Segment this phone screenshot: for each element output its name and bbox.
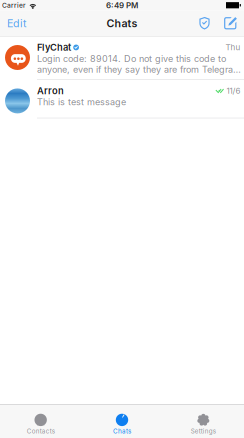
button[interactable]: FlyChat <box>0 36 244 79</box>
staticText: Edit <box>7 17 26 30</box>
staticText: Contacts <box>27 427 55 435</box>
staticText: Login code: 89014. Do not give this code… <box>37 53 226 64</box>
staticText: Settings <box>191 427 216 435</box>
button[interactable]: Contacts <box>0 406 81 437</box>
staticText: 6:49 PM <box>106 0 138 10</box>
button[interactable]: New Message <box>220 10 241 36</box>
staticText: 11/6 <box>226 86 240 96</box>
staticText: Carrier <box>2 1 26 9</box>
staticText: Chats <box>106 17 137 30</box>
button[interactable]: Settings <box>163 406 244 437</box>
staticText: Arron <box>37 85 64 96</box>
staticText: This is test message <box>37 96 126 107</box>
button[interactable]: Arron <box>0 80 244 118</box>
staticText: FlyChat <box>37 42 71 53</box>
staticText: Chats <box>113 427 131 435</box>
button[interactable]: Chats <box>81 406 163 437</box>
button[interactable]: Privacy <box>194 10 215 36</box>
staticText: Thu <box>225 43 240 52</box>
button[interactable]: Edit <box>0 12 33 34</box>
staticText: anyone, even if they say they are from T… <box>37 64 240 75</box>
